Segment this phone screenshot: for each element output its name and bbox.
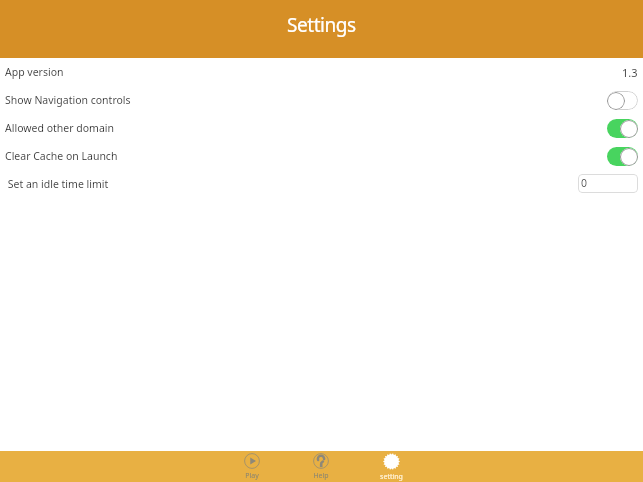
staticText: App version xyxy=(5,65,64,79)
button[interactable]: Set an idle time limit xyxy=(0,170,643,198)
button[interactable]: Help xyxy=(293,451,349,482)
staticText: setting xyxy=(380,472,403,482)
staticText: 0 xyxy=(581,176,588,190)
button[interactable]: Switch on xyxy=(607,119,638,138)
button[interactable]: Clear Cache on Launch xyxy=(0,142,643,170)
staticText: Set an idle time limit xyxy=(5,177,109,191)
staticText: 1.3 xyxy=(622,65,638,80)
button[interactable]: Allowed other domain xyxy=(0,114,643,142)
staticText: Clear Cache on Launch xyxy=(5,149,118,163)
button[interactable]: Switch on xyxy=(607,147,638,166)
button[interactable]: Show Navigation controls xyxy=(0,86,643,114)
staticText: Settings xyxy=(287,12,356,38)
button[interactable]: 0 xyxy=(578,174,638,193)
button[interactable]: App version xyxy=(0,58,643,86)
staticText: Help xyxy=(313,471,329,481)
button[interactable]: setting xyxy=(363,451,419,482)
staticText: Allowed other domain xyxy=(5,121,114,135)
button[interactable]: Switch off xyxy=(607,91,638,110)
staticText: Show Navigation controls xyxy=(5,93,131,107)
staticText: Play xyxy=(245,471,259,481)
button[interactable]: Play xyxy=(224,451,280,482)
